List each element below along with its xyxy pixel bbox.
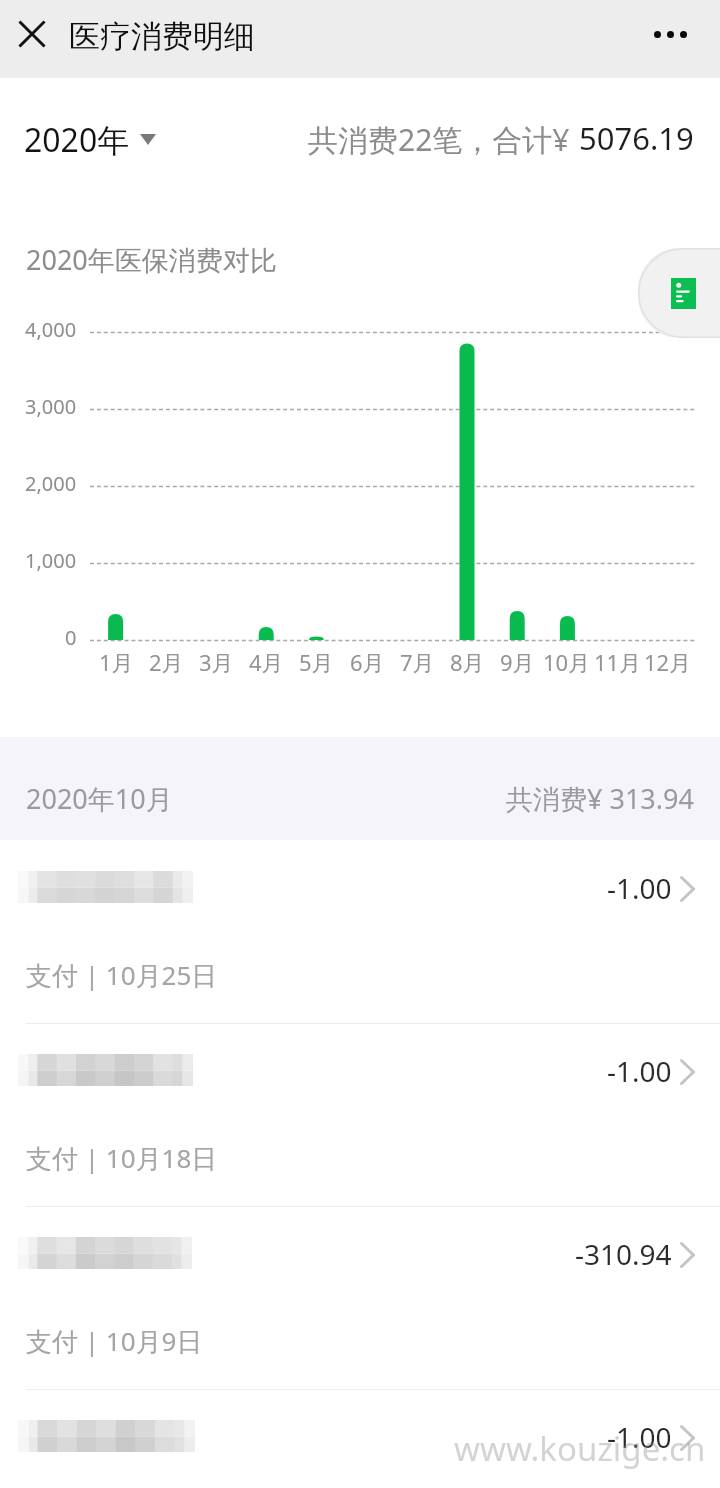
staticText: 支付 | 10月9日 bbox=[26, 1323, 203, 1359]
staticText: 8月 bbox=[450, 647, 485, 677]
button[interactable]: Close bbox=[8, 10, 58, 60]
staticText: 11月 bbox=[594, 647, 642, 677]
button[interactable]: -1.00 bbox=[0, 1389, 720, 1488]
staticText: 12月 bbox=[644, 647, 692, 677]
staticText: -1.00 bbox=[607, 869, 672, 907]
staticText: 支付 | 10月25日 bbox=[26, 957, 218, 993]
staticText: -1.00 bbox=[607, 1418, 672, 1456]
staticText: 2020年 bbox=[24, 118, 130, 162]
staticText: 9月 bbox=[500, 647, 535, 677]
staticText: 0 bbox=[65, 624, 77, 651]
staticText: 3月 bbox=[199, 647, 234, 677]
staticText: 4月 bbox=[249, 647, 284, 677]
staticText: 2020年10月 bbox=[26, 780, 173, 817]
staticText: -310.94 bbox=[575, 1235, 672, 1273]
staticText: 2,000 bbox=[25, 470, 77, 497]
staticText: 4,000 bbox=[25, 316, 77, 343]
staticText: www.kouzige.cn bbox=[454, 1426, 706, 1471]
staticText: 5076.19 bbox=[579, 117, 694, 159]
staticText: 支付 | 10月18日 bbox=[26, 1140, 218, 1176]
staticText: 1,000 bbox=[25, 547, 77, 574]
staticText: 7月 bbox=[400, 647, 435, 677]
staticText: 1月 bbox=[99, 647, 134, 677]
staticText: 2月 bbox=[149, 647, 184, 677]
staticText: 2020年医保消费对比 bbox=[26, 241, 277, 278]
button[interactable]: -310.94 bbox=[0, 1206, 720, 1389]
staticText: 共消费22笔，合计¥ bbox=[308, 119, 570, 160]
staticText: 5月 bbox=[299, 647, 334, 677]
button[interactable]: Bill detail bbox=[638, 248, 720, 338]
staticText: 6月 bbox=[350, 647, 385, 677]
button[interactable]: More options bbox=[644, 10, 700, 60]
staticText: 10月 bbox=[543, 647, 591, 677]
staticText: 3,000 bbox=[25, 393, 77, 420]
staticText: 共消费¥ 313.94 bbox=[506, 780, 694, 817]
button[interactable]: -1.00 bbox=[0, 1023, 720, 1206]
button[interactable]: 2020年 bbox=[22, 116, 162, 164]
button[interactable]: -1.00 bbox=[0, 840, 720, 1023]
staticText: 医疗消费明细 bbox=[69, 17, 255, 56]
staticText: -1.00 bbox=[607, 1052, 672, 1090]
